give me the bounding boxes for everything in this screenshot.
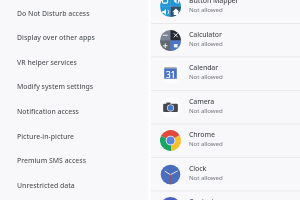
button[interactable]: Modify system settings bbox=[0, 74, 150, 99]
staticText: Not allowed bbox=[189, 5, 223, 13]
button[interactable]: Display over other apps bbox=[0, 25, 150, 50]
staticText: Premium SMS access bbox=[17, 156, 87, 165]
button[interactable]: VR helper services bbox=[0, 50, 150, 75]
staticText: Contacts bbox=[189, 197, 218, 200]
staticText: Do Not Disturb access bbox=[17, 9, 90, 18]
button[interactable]: Notification access bbox=[0, 99, 150, 124]
button[interactable]: Calculator bbox=[160, 24, 300, 58]
staticText: Not allowed bbox=[189, 106, 223, 114]
staticText: Calendar bbox=[189, 63, 219, 73]
staticText: Not allowed bbox=[189, 139, 223, 147]
staticText: Unrestricted data bbox=[17, 181, 75, 190]
staticText: Picture-in-picture bbox=[17, 132, 74, 141]
staticText: Chrome bbox=[189, 130, 215, 140]
button[interactable]: Chrome bbox=[160, 124, 300, 158]
button[interactable]: 31 bbox=[160, 57, 300, 91]
button[interactable]: Picture-in-picture bbox=[0, 124, 150, 149]
button[interactable]: Button Mapper bbox=[160, 0, 300, 24]
button[interactable]: Clock bbox=[160, 158, 300, 192]
staticText: Clock bbox=[189, 164, 207, 174]
button[interactable]: Camera bbox=[160, 91, 300, 125]
button[interactable]: Do Not Disturb access bbox=[0, 1, 150, 26]
staticText: Modify system settings bbox=[17, 82, 94, 91]
staticText: Camera bbox=[189, 97, 215, 107]
staticText: Calculator bbox=[189, 30, 222, 40]
button[interactable]: Contacts bbox=[160, 191, 300, 200]
staticText: Not allowed bbox=[189, 72, 223, 80]
staticText: Notification access bbox=[17, 107, 79, 116]
staticText: Not allowed bbox=[189, 39, 223, 47]
button[interactable]: Premium SMS access bbox=[0, 148, 150, 173]
staticText: VR helper services bbox=[17, 58, 77, 67]
button[interactable]: Unrestricted data bbox=[0, 173, 150, 198]
staticText: Display over other apps bbox=[17, 33, 95, 42]
staticText: 31 bbox=[166, 69, 176, 80]
staticText: Not allowed bbox=[189, 173, 223, 181]
staticText: Button Mapper bbox=[189, 0, 239, 6]
